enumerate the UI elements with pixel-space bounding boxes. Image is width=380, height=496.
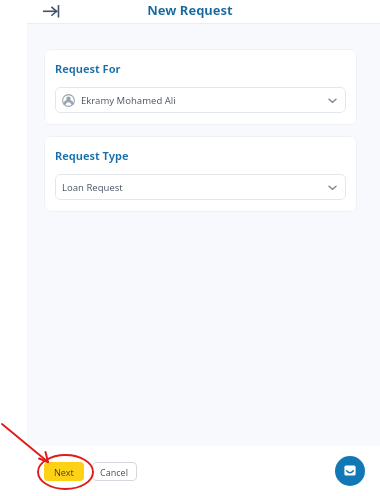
staticText: Cancel	[100, 466, 129, 478]
button[interactable]: Close panel	[40, 0, 64, 23]
staticText: Loan Request	[62, 181, 327, 194]
staticText: Request Type	[55, 148, 129, 163]
staticText: New Request	[147, 1, 233, 19]
staticText: Request For	[55, 61, 121, 76]
button[interactable]: Cancel	[92, 462, 137, 481]
staticText: Ekramy Mohamed Ali	[81, 94, 327, 107]
button[interactable]: Next	[44, 462, 84, 481]
button[interactable]: Loan Request	[55, 174, 346, 200]
button[interactable]: Request For	[44, 49, 357, 125]
staticText: Next	[54, 466, 74, 478]
button[interactable]: Open chat	[335, 456, 365, 486]
button[interactable]: Ekramy Mohamed Ali	[55, 87, 346, 113]
button[interactable]: Request Type	[44, 136, 357, 212]
